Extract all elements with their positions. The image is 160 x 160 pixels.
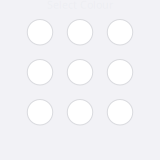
button[interactable]: Colour 4 — [27, 59, 53, 85]
button[interactable]: Colour 6 — [107, 59, 133, 85]
button[interactable]: Colour 8 — [67, 99, 93, 125]
button[interactable]: Colour 1 — [27, 19, 53, 45]
button[interactable]: Colour 2 — [67, 19, 93, 45]
button[interactable]: Colour 3 — [107, 19, 133, 45]
button[interactable]: Colour 9 — [107, 99, 133, 125]
button[interactable]: Colour 5 — [67, 59, 93, 85]
button[interactable]: Colour 7 — [27, 99, 53, 125]
